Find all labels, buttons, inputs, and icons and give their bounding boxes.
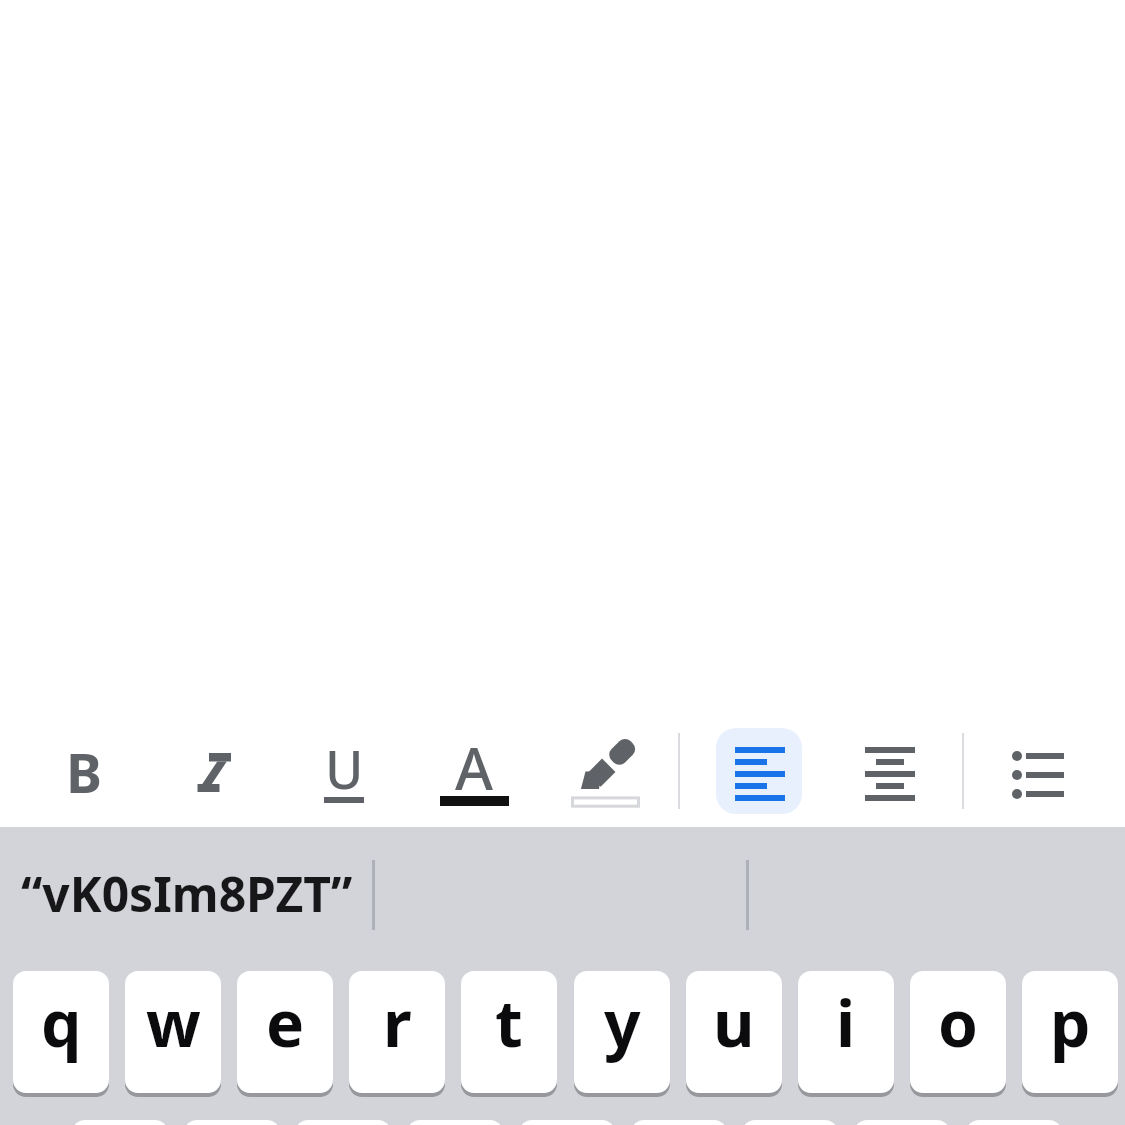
button[interactable]: r (349, 971, 445, 1097)
button[interactable] (716, 728, 802, 814)
button[interactable] (555, 725, 665, 815)
button[interactable] (854, 1120, 950, 1125)
button[interactable] (304, 732, 384, 812)
button[interactable] (295, 1120, 391, 1125)
button[interactable]: i (798, 971, 894, 1097)
staticText: “vK0sIm8PZT” (21, 861, 353, 926)
button[interactable] (407, 1120, 503, 1125)
button[interactable] (173, 732, 253, 812)
button[interactable]: u (686, 971, 782, 1097)
staticText: w (146, 979, 201, 1066)
staticText: p (1050, 979, 1091, 1066)
button[interactable]: e (237, 971, 333, 1097)
staticText: t (495, 979, 523, 1066)
button[interactable]: o (910, 971, 1006, 1097)
button[interactable]: p (1022, 971, 1118, 1097)
staticText: r (383, 979, 412, 1066)
button[interactable]: q (13, 971, 109, 1097)
staticText: B (66, 735, 102, 809)
button[interactable] (434, 732, 514, 812)
staticText: y (604, 979, 641, 1066)
staticText: e (266, 979, 305, 1066)
button[interactable] (72, 1120, 168, 1125)
button[interactable] (966, 1120, 1062, 1125)
button[interactable] (44, 732, 124, 812)
button[interactable]: y (574, 971, 670, 1097)
button[interactable] (631, 1120, 727, 1125)
button[interactable]: t (461, 971, 557, 1097)
button[interactable]: w (125, 971, 221, 1097)
staticText: o (938, 979, 978, 1066)
button[interactable] (519, 1120, 615, 1125)
staticText: i (836, 979, 856, 1066)
button[interactable] (848, 732, 932, 816)
button[interactable] (742, 1120, 838, 1125)
staticText: q (41, 979, 82, 1066)
staticText: u (713, 979, 755, 1066)
staticText: A (455, 728, 493, 807)
staticText: U (325, 733, 364, 804)
button[interactable] (1000, 732, 1080, 812)
button[interactable] (184, 1120, 280, 1125)
button[interactable]: “vK0sIm8PZT” (0, 843, 374, 943)
